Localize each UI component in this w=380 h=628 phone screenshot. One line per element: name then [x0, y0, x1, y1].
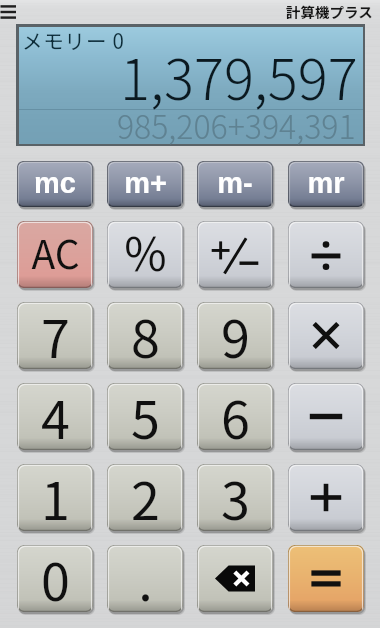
staticText: 8	[131, 302, 160, 365]
button[interactable]: Divide	[288, 221, 364, 288]
staticText: 9	[221, 302, 250, 365]
staticText: 3	[221, 464, 250, 527]
button[interactable]: 9	[197, 302, 273, 369]
button[interactable]: 6	[197, 383, 273, 450]
button[interactable]: 3	[197, 464, 273, 531]
button[interactable]: 0	[17, 545, 93, 612]
staticText: 0	[41, 545, 70, 608]
button[interactable]: %	[107, 221, 183, 288]
button[interactable]: 5	[107, 383, 183, 450]
staticText: 1	[41, 464, 70, 527]
button[interactable]: Backspace	[197, 545, 273, 612]
button[interactable]: mr	[288, 161, 364, 207]
staticText: 6	[221, 383, 250, 446]
staticText: mc	[34, 167, 76, 199]
button[interactable]: 4	[17, 383, 93, 450]
button[interactable]: Menu	[0, 2, 20, 22]
staticText: 計算機プラス	[286, 1, 373, 22]
staticText: .	[138, 545, 153, 608]
button[interactable]: m+	[107, 161, 183, 207]
button[interactable]: Plus minus	[197, 221, 273, 288]
staticText: 2	[131, 464, 160, 527]
button[interactable]: Equals	[288, 545, 364, 612]
button[interactable]: 8	[107, 302, 183, 369]
button[interactable]: Multiply	[288, 302, 364, 369]
staticText: m-	[217, 167, 253, 199]
button[interactable]: Subtract	[288, 383, 364, 450]
button[interactable]: Add	[288, 464, 364, 531]
button[interactable]: 2	[107, 464, 183, 531]
staticText: AC	[31, 224, 80, 280]
button[interactable]: 1	[17, 464, 93, 531]
button[interactable]: 7	[17, 302, 93, 369]
staticText: m+	[124, 167, 167, 199]
staticText: メモリー 0	[22, 25, 125, 55]
staticText: mr	[307, 167, 345, 199]
staticText: 5	[131, 383, 160, 446]
button[interactable]: .	[107, 545, 183, 612]
button[interactable]: AC	[17, 221, 93, 288]
button[interactable]: m-	[197, 161, 273, 207]
staticText: 4	[41, 383, 70, 446]
staticText: 985,206+394,391	[117, 102, 356, 148]
staticText: 7	[41, 302, 70, 365]
staticText: 1,379,597	[120, 35, 358, 116]
staticText: %	[124, 221, 167, 285]
button[interactable]: mc	[17, 161, 93, 207]
